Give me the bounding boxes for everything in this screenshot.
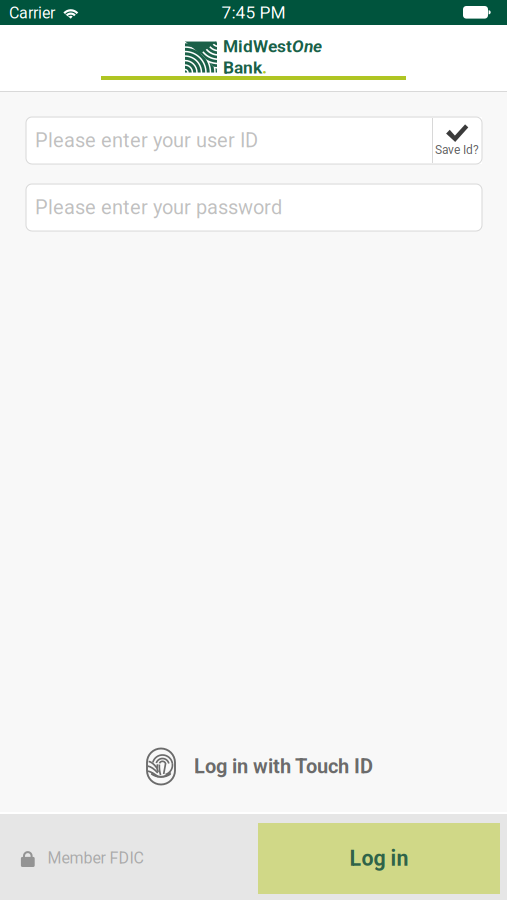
- staticText: One: [292, 36, 322, 56]
- staticText: 7:45 PM: [221, 2, 285, 23]
- button[interactable]: Save Id: [432, 117, 482, 164]
- staticText: Please enter your user ID: [35, 129, 258, 152]
- staticText: Please enter your password: [35, 196, 282, 219]
- button[interactable]: Log in with Touch ID: [143, 741, 373, 792]
- staticText: Log in with Touch ID: [194, 755, 373, 778]
- staticText: Member FDIC: [47, 849, 143, 867]
- staticText: Bank: [223, 57, 262, 78]
- staticText: MidWest: [223, 36, 292, 56]
- staticText: Carrier: [9, 4, 55, 22]
- staticText: Save Id?: [435, 143, 479, 157]
- staticText: Log in: [349, 846, 408, 871]
- staticText: .: [262, 57, 267, 78]
- button[interactable]: Log in: [258, 823, 500, 894]
